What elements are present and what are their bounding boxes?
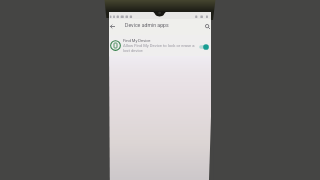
button[interactable]: Back (107, 21, 117, 31)
staticText: Allow Find My Device to lock or erase a … (123, 43, 196, 53)
button[interactable]: Toggle Find My Device (198, 42, 211, 52)
button[interactable]: Find My Device (109, 35, 211, 56)
staticText: Device admin apps (125, 22, 169, 28)
button[interactable]: Search (202, 21, 212, 31)
staticText: Find My Device (123, 38, 151, 43)
